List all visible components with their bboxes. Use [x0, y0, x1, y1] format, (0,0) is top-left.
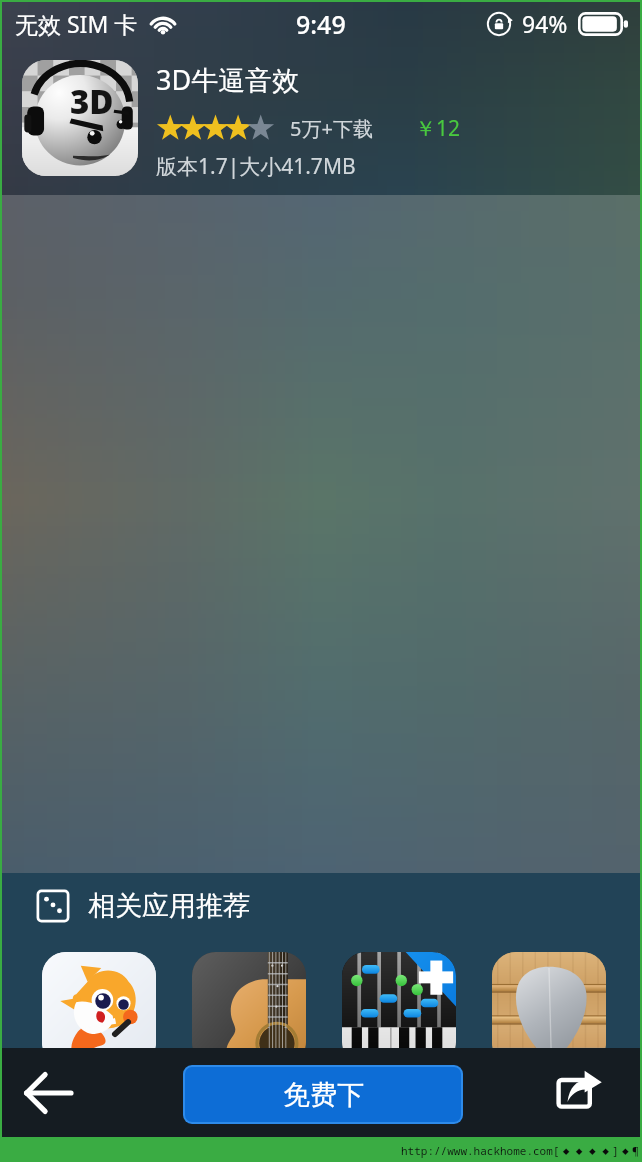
button[interactable]: 免费下 — [183, 1065, 463, 1124]
button[interactable]: Share — [544, 1053, 620, 1129]
staticText: 9:49 — [296, 7, 346, 41]
button[interactable]: App 3 — [342, 952, 456, 1048]
button[interactable]: App 4 — [492, 952, 606, 1048]
staticText: ￥12 — [415, 114, 461, 143]
staticText: 94% — [522, 8, 568, 39]
staticText: 无效 SIM 卡 — [15, 8, 138, 39]
button[interactable]: 相关应用推荐 — [35, 888, 250, 924]
staticText: 5万+下载 — [290, 115, 373, 142]
button[interactable]: Back — [10, 1055, 86, 1131]
staticText: 免费下 — [283, 1078, 364, 1112]
staticText: 3D牛逼音效 — [156, 61, 300, 98]
staticText: 3D — [70, 79, 114, 124]
button[interactable]: App 1 — [42, 952, 156, 1048]
staticText: 相关应用推荐 — [88, 889, 250, 923]
staticText: http://www.hackhome.com[◆◆◆◆]◆¶ — [401, 1143, 639, 1158]
button[interactable]: App 2 — [192, 952, 306, 1048]
staticText: 版本1.7|大小41.7MB — [156, 152, 356, 181]
